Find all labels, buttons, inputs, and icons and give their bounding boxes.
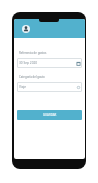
staticText: Referencia de gastos bbox=[19, 51, 47, 55]
button[interactable]: GUARDAR bbox=[17, 110, 82, 120]
staticText: 30 Sep 2020 bbox=[19, 61, 38, 65]
staticText: Viaje bbox=[19, 85, 27, 89]
button[interactable]: 30 Sep 2020 bbox=[17, 58, 82, 68]
button[interactable]: Viaje bbox=[17, 82, 82, 92]
staticText: GUARDAR bbox=[43, 113, 57, 117]
staticText: Categoría del gasto bbox=[19, 75, 45, 79]
button[interactable]: Profile bbox=[22, 25, 30, 33]
